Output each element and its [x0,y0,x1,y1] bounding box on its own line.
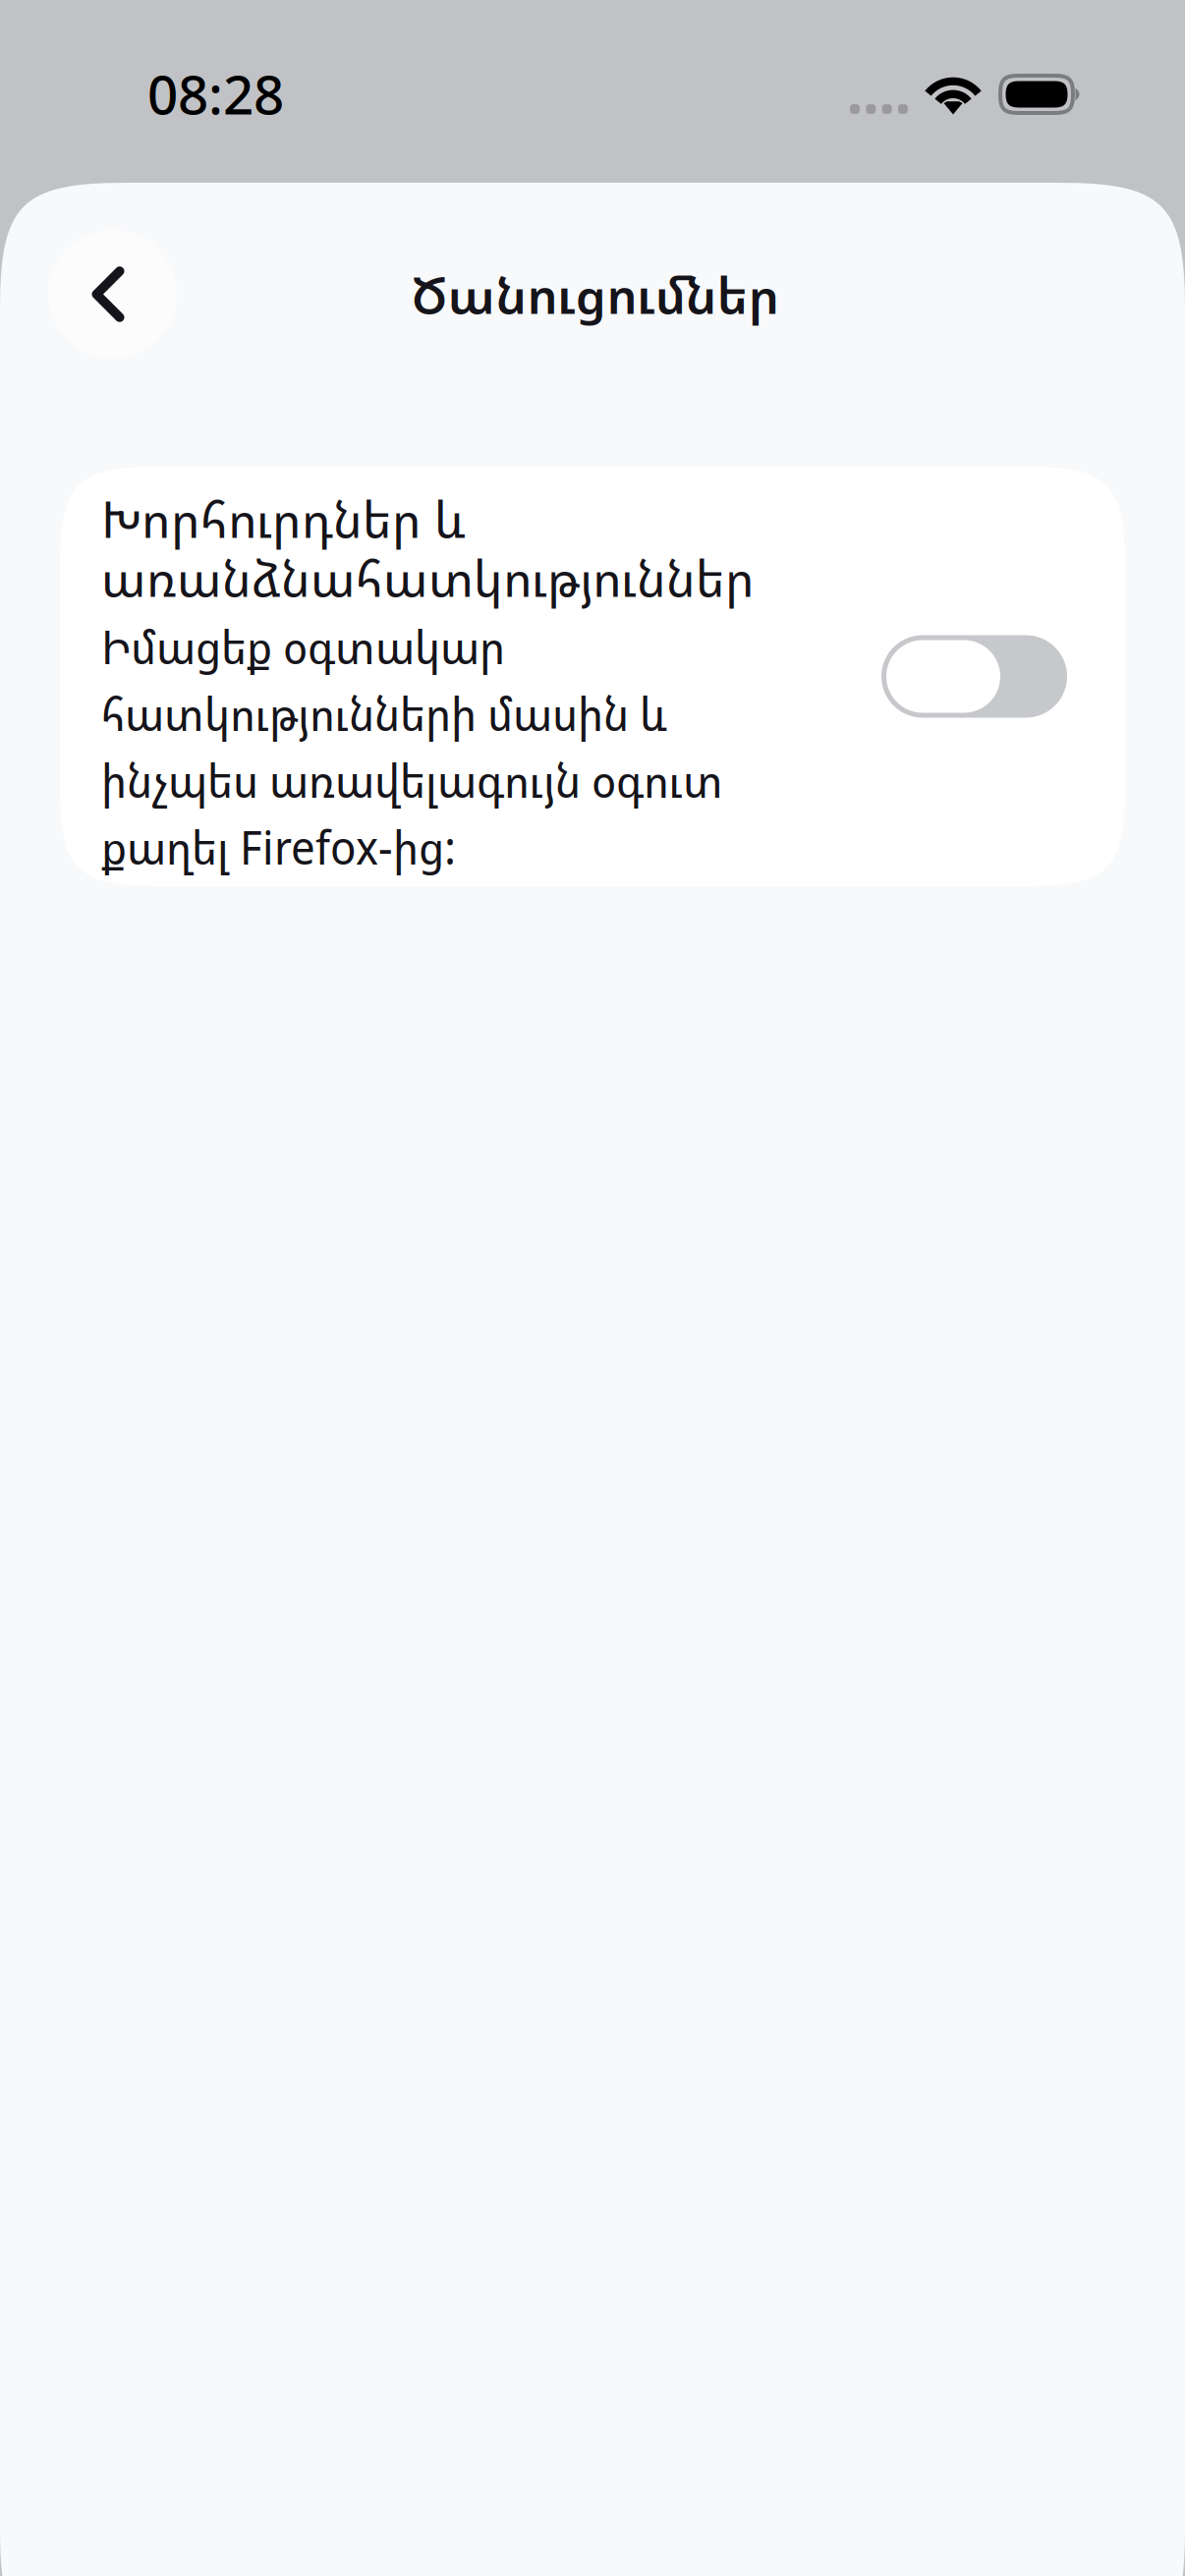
staticText: 08:28 [147,57,284,130]
staticText: Իմացեք օգտակար հատկությունների մասին և ի… [101,615,723,878]
staticText: Ծանուցումներ [411,259,780,329]
button[interactable]: Back [48,230,177,359]
staticText: Խորհուրդներ և առանձնահատկություններ [101,485,755,611]
button[interactable]: Խորհուրդներ և առանձնահատկություններ [60,467,1125,886]
